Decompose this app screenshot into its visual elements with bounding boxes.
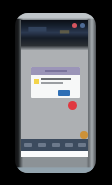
button[interactable]: Add (68, 101, 77, 110)
button[interactable]: OK (58, 90, 70, 96)
button[interactable] (49, 139, 62, 151)
button[interactable] (21, 139, 35, 151)
button[interactable] (75, 139, 88, 151)
button[interactable] (62, 139, 75, 151)
button[interactable]: Favorites (72, 23, 77, 28)
button[interactable] (35, 139, 49, 151)
button[interactable]: Notifications (80, 131, 88, 139)
button[interactable]: Account (80, 23, 85, 28)
